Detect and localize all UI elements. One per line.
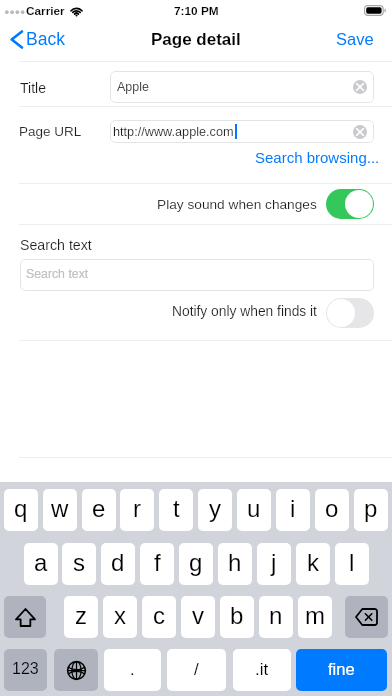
button[interactable]: d: [101, 543, 135, 585]
button[interactable]: h: [218, 543, 252, 585]
staticText: d: [111, 549, 125, 576]
staticText: l: [349, 549, 355, 576]
staticText: y: [209, 495, 221, 522]
staticText: http://www.apple.com: [113, 125, 234, 139]
button[interactable]: Switch off: [326, 298, 374, 328]
button[interactable]: j: [257, 543, 291, 585]
staticText: t: [173, 495, 180, 522]
button[interactable]: a: [24, 543, 58, 585]
button[interactable]: Clear text: [353, 80, 367, 94]
button[interactable]: y: [198, 489, 232, 531]
button[interactable]: fine: [296, 649, 387, 691]
button[interactable]: f: [140, 543, 174, 585]
staticText: e: [92, 495, 106, 522]
button[interactable]: .: [104, 649, 161, 691]
button[interactable]: q: [4, 489, 38, 531]
button[interactable]: Back: [0, 24, 75, 54]
button[interactable]: Apple: [110, 71, 374, 103]
staticText: fine: [328, 660, 355, 678]
staticText: w: [51, 495, 69, 522]
button[interactable]: Switch keyboard: [54, 649, 98, 691]
staticText: /: [194, 660, 199, 679]
button[interactable]: Clear text: [353, 125, 367, 139]
staticText: r: [133, 495, 141, 522]
staticText: o: [325, 495, 339, 522]
button[interactable]: t: [159, 489, 193, 531]
staticText: h: [228, 549, 242, 576]
staticText: i: [290, 495, 296, 522]
staticText: b: [230, 602, 244, 629]
staticText: Apple: [117, 80, 149, 94]
button[interactable]: /: [167, 649, 226, 691]
button[interactable]: s: [62, 543, 96, 585]
button[interactable]: Search text: [20, 259, 374, 291]
button[interactable]: Switch on: [326, 189, 374, 219]
button[interactable]: c: [142, 596, 176, 638]
staticText: Back: [26, 29, 65, 49]
staticText: Page URL: [19, 124, 82, 139]
staticText: 7:10 PM: [174, 4, 219, 17]
staticText: g: [189, 549, 203, 576]
button[interactable]: z: [64, 596, 98, 638]
button[interactable]: r: [120, 489, 154, 531]
staticText: Play sound when changes: [157, 197, 317, 212]
staticText: c: [153, 602, 165, 629]
button[interactable]: m: [298, 596, 332, 638]
staticText: x: [114, 602, 126, 629]
staticText: u: [247, 495, 261, 522]
button[interactable]: Search browsing...: [252, 146, 383, 169]
staticText: n: [269, 602, 283, 629]
button[interactable]: g: [179, 543, 213, 585]
staticText: .: [130, 660, 135, 679]
staticText: a: [34, 549, 48, 576]
button[interactable]: x: [103, 596, 137, 638]
button[interactable]: w: [43, 489, 77, 531]
button[interactable]: v: [181, 596, 215, 638]
button[interactable]: Backspace: [345, 596, 388, 638]
staticText: Search text: [20, 237, 92, 253]
button[interactable]: u: [237, 489, 271, 531]
button[interactable]: e: [82, 489, 116, 531]
staticText: z: [75, 602, 87, 629]
button[interactable]: Shift: [4, 596, 46, 638]
staticText: Carrier: [26, 4, 65, 17]
button[interactable]: .it: [233, 649, 291, 691]
staticText: .it: [255, 660, 269, 679]
staticText: q: [14, 495, 28, 522]
button[interactable]: n: [259, 596, 293, 638]
staticText: 123: [12, 660, 39, 678]
button[interactable]: b: [220, 596, 254, 638]
button[interactable]: l: [335, 543, 369, 585]
staticText: Notify only when finds it: [172, 304, 317, 319]
staticText: Title: [20, 80, 46, 96]
staticText: Search text: [26, 267, 89, 281]
button[interactable]: k: [296, 543, 330, 585]
staticText: Save: [336, 30, 374, 48]
staticText: Page detail: [151, 30, 241, 49]
staticText: s: [73, 549, 85, 576]
staticText: p: [364, 495, 378, 522]
button[interactable]: p: [354, 489, 388, 531]
staticText: j: [271, 549, 277, 576]
button[interactable]: o: [315, 489, 349, 531]
button[interactable]: i: [276, 489, 310, 531]
button[interactable]: Save: [322, 24, 392, 54]
button[interactable]: 123: [4, 649, 47, 691]
staticText: k: [307, 549, 319, 576]
button[interactable]: http://www.apple.com: [110, 120, 374, 143]
staticText: v: [192, 602, 204, 629]
staticText: Search browsing...: [255, 149, 380, 166]
staticText: f: [154, 549, 161, 576]
staticText: m: [305, 602, 325, 629]
